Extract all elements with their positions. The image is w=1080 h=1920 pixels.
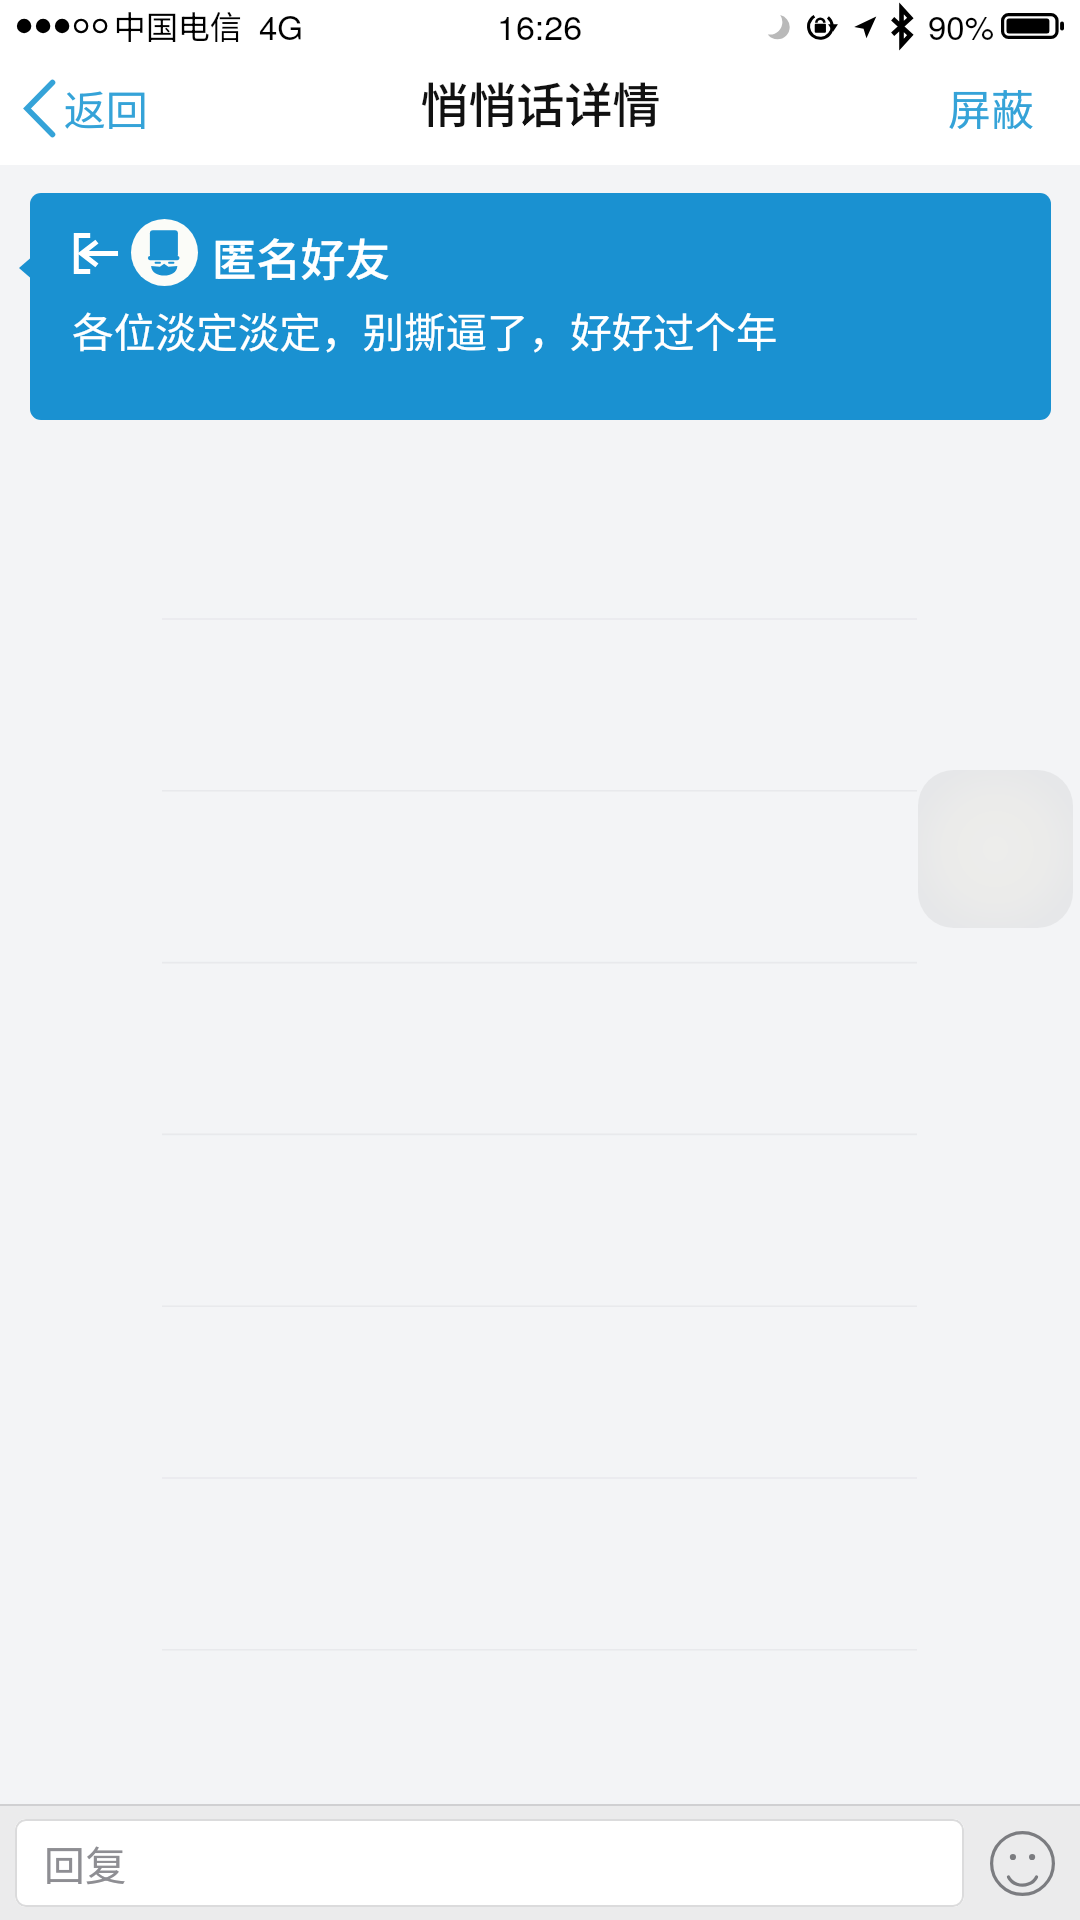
staticText: 90% bbox=[928, 2, 995, 42]
staticText: 回复 bbox=[44, 1833, 126, 1892]
staticText: 悄悄话详情 bbox=[420, 67, 661, 131]
staticText: 各位淡定淡定，别撕逼了，好好过个年 bbox=[72, 300, 778, 360]
staticText: 4G bbox=[259, 2, 304, 42]
staticText: 屏蔽 bbox=[948, 76, 1034, 138]
staticText: 匿名好友 bbox=[212, 224, 391, 288]
button[interactable]: Emoji bbox=[977, 1818, 1067, 1908]
staticText: 返回 bbox=[64, 77, 149, 137]
button[interactable]: 匿名好友 bbox=[30, 193, 1051, 420]
button[interactable]: 返回 bbox=[0, 60, 169, 136]
staticText: 中国电信 bbox=[114, 2, 243, 42]
button[interactable]: 屏蔽 bbox=[918, 60, 1080, 138]
button[interactable]: 回复 bbox=[15, 1819, 964, 1907]
staticText: 16:26 bbox=[497, 1, 583, 41]
